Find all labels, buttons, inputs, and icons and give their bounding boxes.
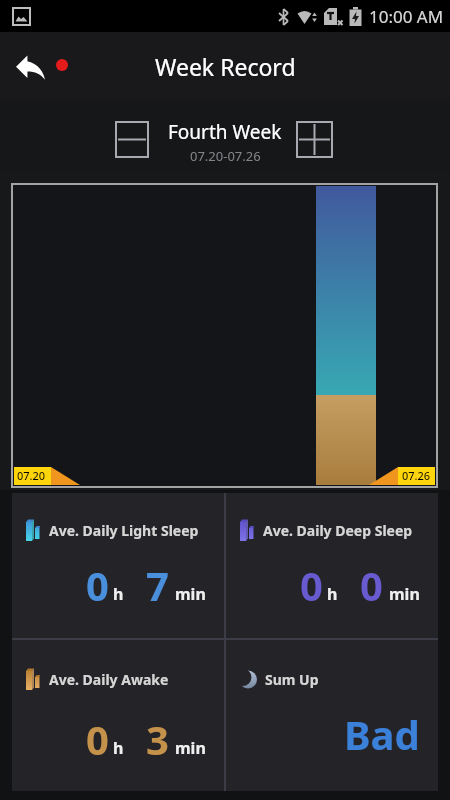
staticText: 10:00 AM [369,5,444,28]
button[interactable]: Sum Up [226,640,438,791]
button[interactable]: Ave. Daily Deep Sleep [226,493,438,638]
button[interactable]: Ave. Daily Awake [12,640,224,791]
staticText: min [175,737,206,759]
staticText: h [113,737,124,759]
staticText: Ave. Daily Light Sleep [49,521,199,540]
staticText: 0 [360,558,383,612]
staticText: 07.20-07.26 [190,147,261,165]
staticText: h [327,583,338,605]
staticText: 0 [86,558,109,612]
staticText: 7 [146,558,169,612]
button[interactable]: Ave. Daily Light Sleep [12,493,224,638]
button[interactable] [116,122,148,157]
staticText: Bad [344,707,420,761]
staticText: Fourth Week [168,119,282,145]
staticText: h [113,583,124,605]
staticText: 3 [146,712,169,766]
staticText: Sum Up [265,670,319,689]
staticText: 07.26 [402,468,431,483]
staticText: 0 [300,558,323,612]
staticText: 0 [86,712,109,766]
staticText: Ave. Daily Awake [49,670,169,689]
button[interactable] [6,43,54,91]
button[interactable] [297,122,332,157]
staticText: Ave. Daily Deep Sleep [263,521,413,540]
staticText: 07.20 [17,468,46,483]
staticText: Week Record [155,51,296,82]
staticText: min [389,583,420,605]
staticText: min [175,583,206,605]
